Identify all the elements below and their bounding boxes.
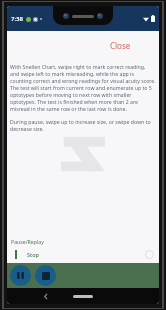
button[interactable]: Help xyxy=(143,248,156,261)
button[interactable]: Close xyxy=(82,37,159,54)
staticText: 7:38 xyxy=(11,15,23,23)
staticText: Close xyxy=(110,40,131,51)
staticText: With Snellen Chart, swipe right to mark … xyxy=(10,63,156,112)
button[interactable]: Back xyxy=(41,291,51,301)
button[interactable]: Stop xyxy=(35,265,56,286)
staticText: Stop xyxy=(27,251,39,258)
button[interactable]: Home xyxy=(72,292,94,300)
button[interactable]: Pause or Replay xyxy=(10,265,31,286)
staticText: During pause, swipe up to increase size,… xyxy=(10,118,156,132)
staticText: Pause/Replay xyxy=(11,238,44,245)
